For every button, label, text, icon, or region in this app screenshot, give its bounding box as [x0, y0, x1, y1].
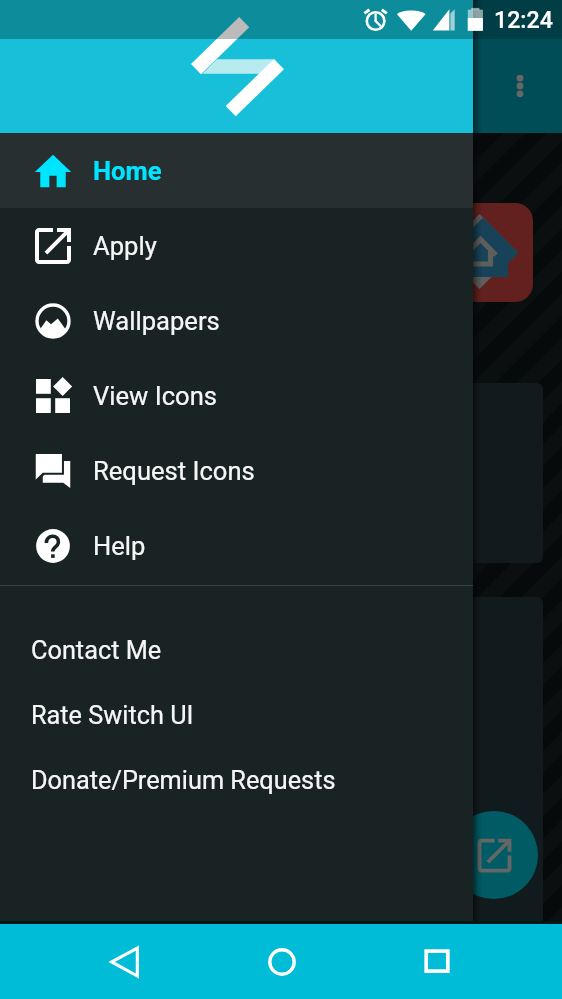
button[interactable]: Home: [0, 133, 473, 208]
button[interactable]: Rate Switch UI: [0, 683, 473, 748]
button[interactable]: Help: [0, 508, 473, 583]
button[interactable]: View Icons: [0, 358, 473, 433]
staticText: View Icons: [93, 381, 217, 411]
staticText: Help: [93, 531, 146, 561]
button[interactable]: Back: [87, 924, 162, 999]
staticText: Donate/Premium Requests: [31, 766, 336, 796]
button[interactable]: Contact Me: [0, 618, 473, 683]
button[interactable]: Apply: [0, 208, 473, 283]
staticText: Wallpapers: [93, 306, 220, 336]
button[interactable]: Donate/Premium Requests: [0, 748, 473, 813]
staticText: Rate Switch UI: [31, 701, 194, 731]
button[interactable]: Request Icons: [0, 433, 473, 508]
button[interactable]: More options: [492, 58, 548, 114]
button[interactable]: Recents: [400, 924, 475, 999]
staticText: Contact Me: [31, 636, 162, 666]
button[interactable]: Wallpapers: [0, 283, 473, 358]
staticText: Home: [93, 156, 162, 186]
button[interactable]: Home: [244, 924, 319, 999]
staticText: 12:24: [494, 6, 553, 33]
staticText: Apply: [93, 231, 157, 261]
staticText: Request Icons: [93, 456, 255, 486]
button[interactable]: Apply: [450, 811, 538, 899]
